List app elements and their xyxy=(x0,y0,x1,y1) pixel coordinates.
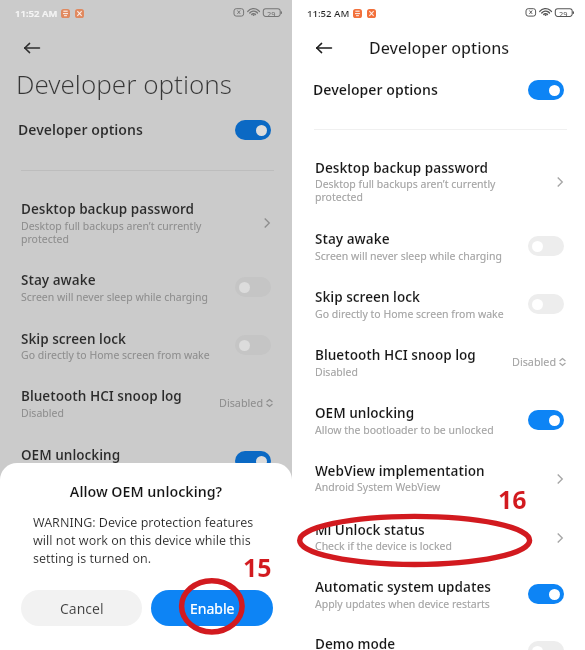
staticText: Android System WebView xyxy=(315,480,441,494)
staticText: Developer options xyxy=(18,120,143,139)
staticText: Stay awake xyxy=(21,271,96,289)
staticText: WARNING: Device protection features will… xyxy=(33,514,254,567)
button[interactable] xyxy=(0,611,292,650)
staticText: 29 xyxy=(559,9,568,19)
button[interactable] xyxy=(0,494,292,540)
button[interactable] xyxy=(292,279,585,325)
staticText: Desktop full backups aren’t currently pr… xyxy=(315,177,496,204)
staticText: Skip screen lock xyxy=(315,288,420,306)
staticText: Check if the device is locked xyxy=(21,580,158,594)
staticText: Go directly to Home screen from wake xyxy=(21,348,210,362)
staticText: Disabled xyxy=(512,354,557,369)
staticText: Stay awake xyxy=(315,230,390,248)
staticText: Cancel xyxy=(60,599,104,618)
staticText: Automatic system updates xyxy=(315,578,491,596)
button[interactable]: Switch off xyxy=(528,641,564,650)
staticText: Disabled xyxy=(315,365,358,379)
staticText: Developer options xyxy=(16,66,232,101)
staticText: Skip screen lock xyxy=(21,330,126,348)
staticText: 16 xyxy=(498,482,527,516)
staticText: 15 xyxy=(243,550,272,584)
staticText: OEM unlocking xyxy=(21,446,121,464)
staticText: Check if the device is locked xyxy=(315,539,452,553)
staticText: OEM unlocking xyxy=(315,404,415,422)
button[interactable] xyxy=(292,395,585,441)
staticText: 29 xyxy=(267,9,276,19)
button[interactable] xyxy=(0,110,292,148)
button[interactable] xyxy=(0,191,292,237)
button[interactable]: Switch off xyxy=(528,294,564,314)
button[interactable] xyxy=(292,150,585,196)
staticText: Developer options xyxy=(313,80,438,99)
staticText: Screen will never sleep while charging xyxy=(315,249,502,263)
button[interactable]: Switch on xyxy=(235,120,271,140)
button[interactable]: Back xyxy=(24,43,40,53)
staticText: Desktop backup password xyxy=(21,200,195,218)
button[interactable]: Cancel xyxy=(21,590,142,626)
button[interactable] xyxy=(292,71,585,109)
button[interactable]: Switch on xyxy=(528,80,564,100)
staticText: Enable xyxy=(190,599,235,618)
button[interactable] xyxy=(292,512,585,558)
button[interactable]: Switch on xyxy=(528,410,564,430)
button[interactable] xyxy=(292,221,585,267)
button[interactable]: Back xyxy=(316,43,332,53)
staticText: Disabled xyxy=(21,406,64,420)
staticText: Allow the bootloader to be unlocked xyxy=(315,423,494,437)
button[interactable]: Switch on xyxy=(528,584,564,604)
staticText: Mi Unlock status xyxy=(315,521,425,539)
button[interactable]: Switch on xyxy=(235,625,271,645)
button[interactable] xyxy=(292,569,585,615)
button[interactable] xyxy=(0,553,292,599)
staticText: Mi Unlock status xyxy=(21,562,131,580)
staticText: Android System WebView xyxy=(21,522,147,536)
button[interactable]: Enable xyxy=(151,590,273,626)
button[interactable]: Switch off xyxy=(235,277,271,297)
staticText: 11:52 AM xyxy=(15,7,58,20)
staticText: 11:52 AM xyxy=(307,7,350,20)
staticText: Screen will never sleep while charging xyxy=(21,290,208,304)
button[interactable] xyxy=(0,262,292,308)
button[interactable]: Switch on xyxy=(235,451,271,471)
staticText: Go directly to Home screen from wake xyxy=(315,307,504,321)
staticText: Desktop backup password xyxy=(315,159,489,177)
staticText: Demo mode xyxy=(315,635,396,650)
staticText: Bluetooth HCI snoop log xyxy=(315,346,476,364)
button[interactable] xyxy=(0,437,292,483)
button[interactable]: Switch off xyxy=(528,236,564,256)
button[interactable] xyxy=(0,378,292,424)
staticText: Developer options xyxy=(369,37,510,59)
button[interactable] xyxy=(292,453,585,499)
button[interactable] xyxy=(292,626,585,650)
button[interactable] xyxy=(0,321,292,367)
button[interactable]: Switch off xyxy=(235,335,271,355)
staticText: Bluetooth HCI snoop log xyxy=(21,387,182,405)
staticText: WebView implementation xyxy=(315,462,485,480)
staticText: Apply updates when device restarts xyxy=(315,597,490,611)
staticText: WebView implementation xyxy=(21,503,191,521)
staticText: Disabled xyxy=(219,395,264,410)
staticText: Desktop full backups aren’t currently pr… xyxy=(21,219,202,246)
staticText: Allow OEM unlocking? xyxy=(0,482,292,501)
button[interactable] xyxy=(292,337,585,383)
staticText: Automatic system updates xyxy=(21,620,197,638)
